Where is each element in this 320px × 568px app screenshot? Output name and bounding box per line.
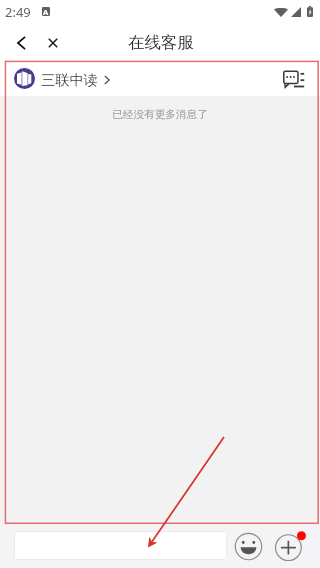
button[interactable]: Back bbox=[7, 29, 35, 57]
button[interactable] bbox=[14, 531, 227, 560]
button[interactable]: More options bbox=[272, 528, 308, 564]
button[interactable]: Close bbox=[39, 29, 67, 57]
button[interactable]: Emoji bbox=[233, 531, 263, 561]
staticText: 已经没有更多消息了 bbox=[0, 108, 320, 121]
button[interactable]: Messages bbox=[284, 65, 312, 93]
button[interactable]: 三联中读 bbox=[14, 68, 110, 89]
staticText: A bbox=[43, 7, 49, 16]
staticText: 三联中读 bbox=[41, 71, 98, 89]
staticText: 2:49 bbox=[5, 3, 31, 21]
staticText: 在线客服 bbox=[128, 32, 194, 53]
